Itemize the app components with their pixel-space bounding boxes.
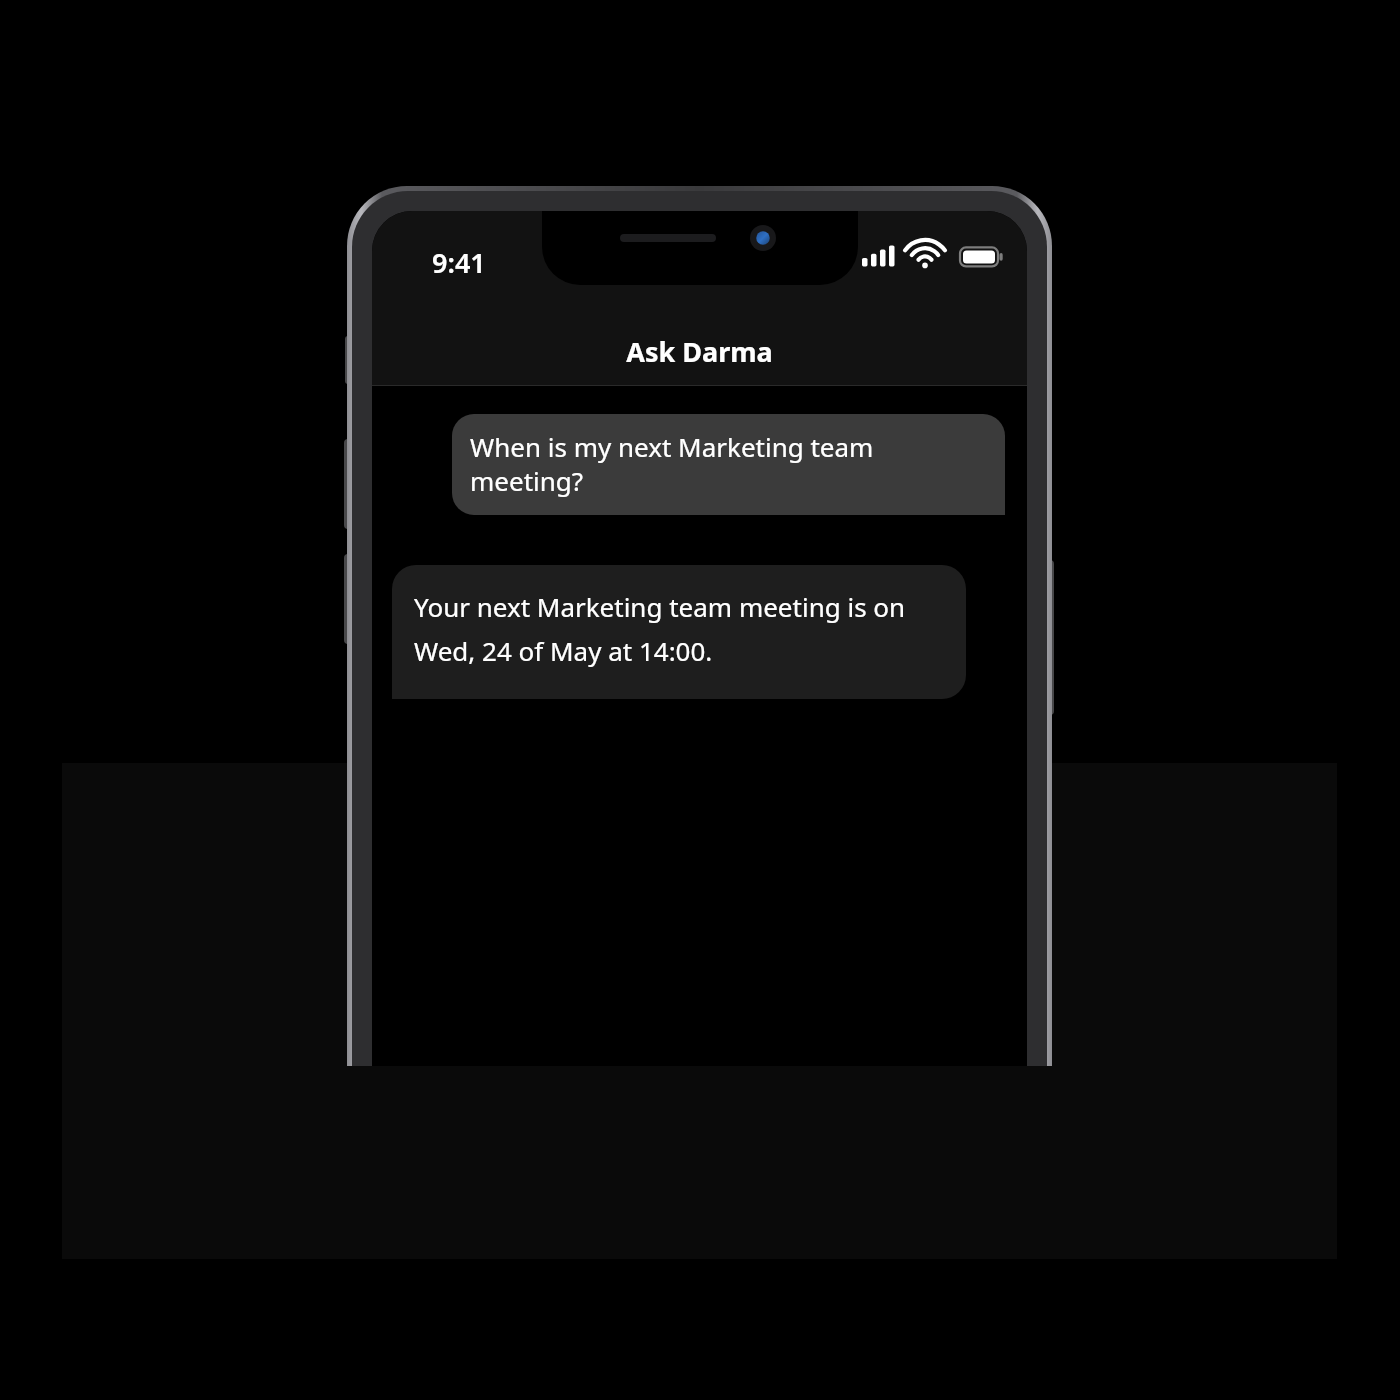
button[interactable]: When is my next Marketing team meeting? [452, 414, 1005, 515]
button[interactable]: Your next Marketing team meeting is on W… [392, 565, 966, 699]
staticText: Your next Marketing team meeting is on W… [414, 589, 946, 669]
staticText: Ask Darma [626, 333, 773, 370]
staticText: When is my next Marketing team meeting? [470, 429, 987, 498]
staticText: 9:41 [432, 244, 486, 281]
